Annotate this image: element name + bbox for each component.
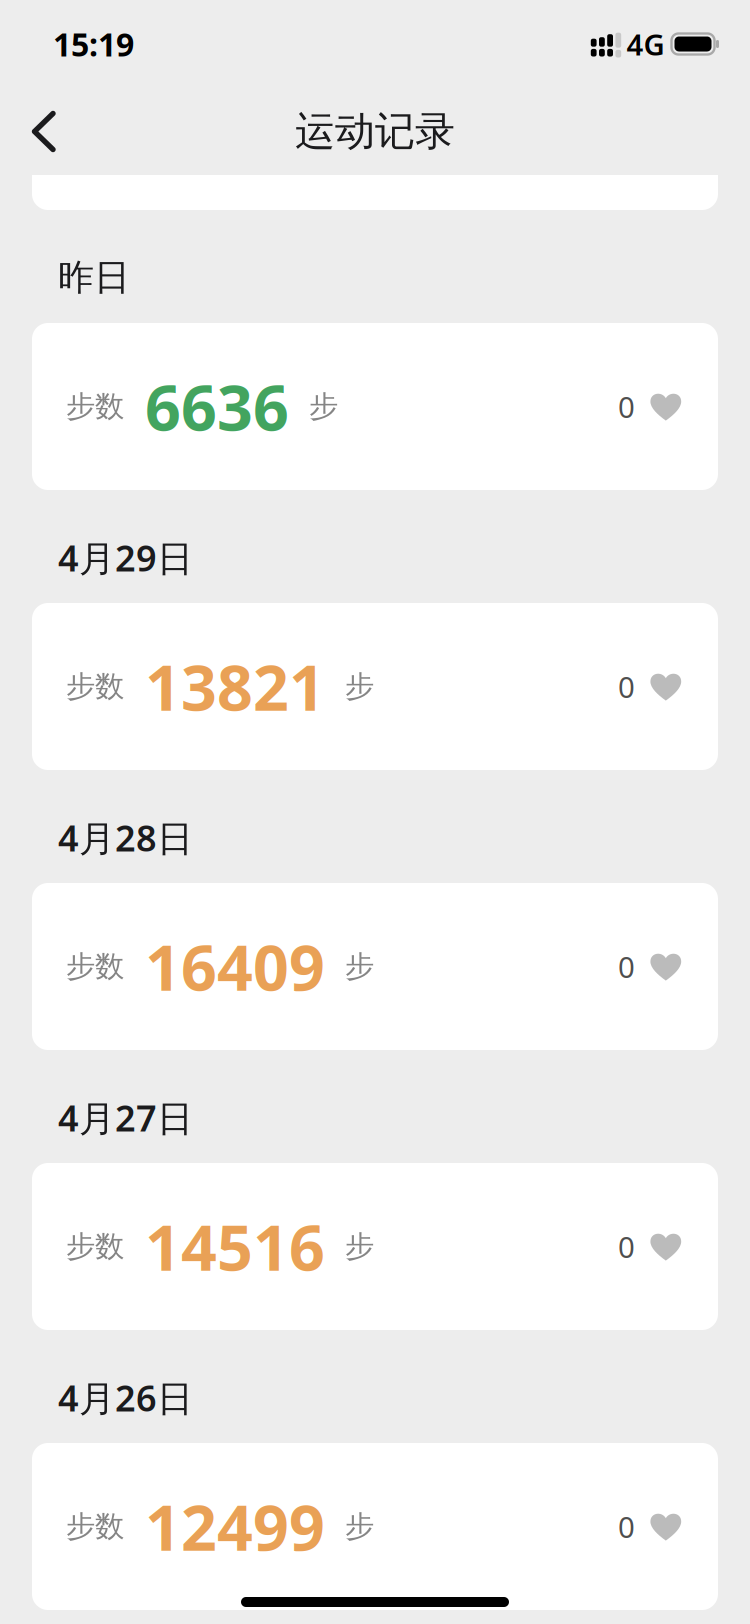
staticText: 4月27日	[58, 1094, 193, 1141]
staticText: 昨日	[58, 255, 130, 300]
staticText: 步数	[66, 668, 124, 704]
button[interactable]: Like, 0 likes	[618, 947, 682, 986]
staticText: 0	[618, 387, 635, 426]
button[interactable]: Like, 0 likes	[618, 387, 682, 426]
staticText: 16409	[145, 925, 325, 1008]
staticText: 12499	[145, 1485, 325, 1568]
staticText: 0	[618, 667, 635, 706]
staticText: 0	[618, 1227, 635, 1266]
button[interactable]: Like, 0 likes	[618, 1227, 682, 1266]
staticText: 步数	[66, 948, 124, 984]
staticText: 15:19	[53, 23, 134, 65]
staticText: 0	[618, 947, 635, 986]
staticText: 步	[345, 1508, 374, 1544]
staticText: 运动记录	[295, 107, 455, 156]
staticText: 4G	[626, 24, 664, 63]
staticText: 步数	[66, 1508, 124, 1544]
staticText: 步	[345, 1228, 374, 1264]
staticText: 4月29日	[58, 534, 193, 581]
button[interactable]: Like, 0 likes	[618, 1507, 682, 1546]
staticText: 步数	[66, 1228, 124, 1264]
button[interactable]: Back	[0, 87, 88, 175]
staticText: 14516	[145, 1205, 325, 1288]
staticText: 6636	[145, 365, 289, 448]
staticText: 步	[345, 948, 374, 984]
button[interactable]: 步数	[32, 1163, 718, 1330]
button[interactable]: 步数	[32, 603, 718, 770]
button[interactable]: 步数	[32, 883, 718, 1050]
staticText: 4月26日	[58, 1374, 193, 1421]
button[interactable]: 步数	[32, 323, 718, 490]
staticText: 步	[309, 388, 338, 424]
button[interactable]: 步数	[32, 1443, 718, 1610]
staticText: 13821	[145, 645, 325, 728]
staticText: 步数	[66, 388, 124, 424]
staticText: 0	[618, 1507, 635, 1546]
staticText: 步	[345, 668, 374, 704]
button[interactable]: Like, 0 likes	[618, 667, 682, 706]
staticText: 4月28日	[58, 814, 193, 861]
